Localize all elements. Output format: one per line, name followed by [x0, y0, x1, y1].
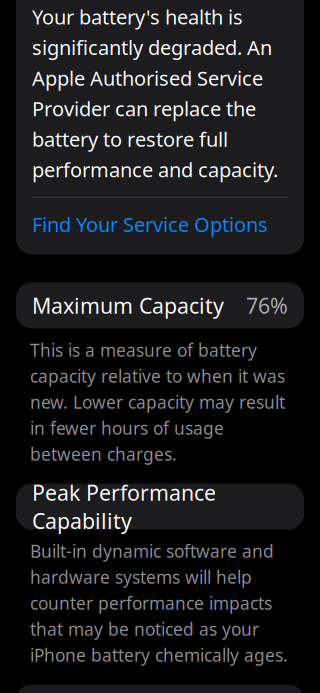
- button[interactable]: Find Your Service Options: [32, 211, 288, 237]
- staticText: 76%: [246, 291, 288, 320]
- button[interactable]: Peak Performance Capability: [16, 483, 304, 529]
- staticText: Peak Performance Capability: [32, 478, 216, 535]
- button[interactable]: Optimised Battery Charging: [16, 685, 304, 693]
- staticText: This is a measure of battery capacity re…: [30, 338, 285, 465]
- staticText: Find Your Service Options: [32, 211, 268, 237]
- staticText: Your battery's health is significantly d…: [32, 3, 278, 183]
- button[interactable]: Maximum Capacity: [16, 282, 304, 328]
- staticText: Built-in dynamic software and hardware s…: [30, 539, 288, 667]
- staticText: Maximum Capacity: [32, 291, 224, 320]
